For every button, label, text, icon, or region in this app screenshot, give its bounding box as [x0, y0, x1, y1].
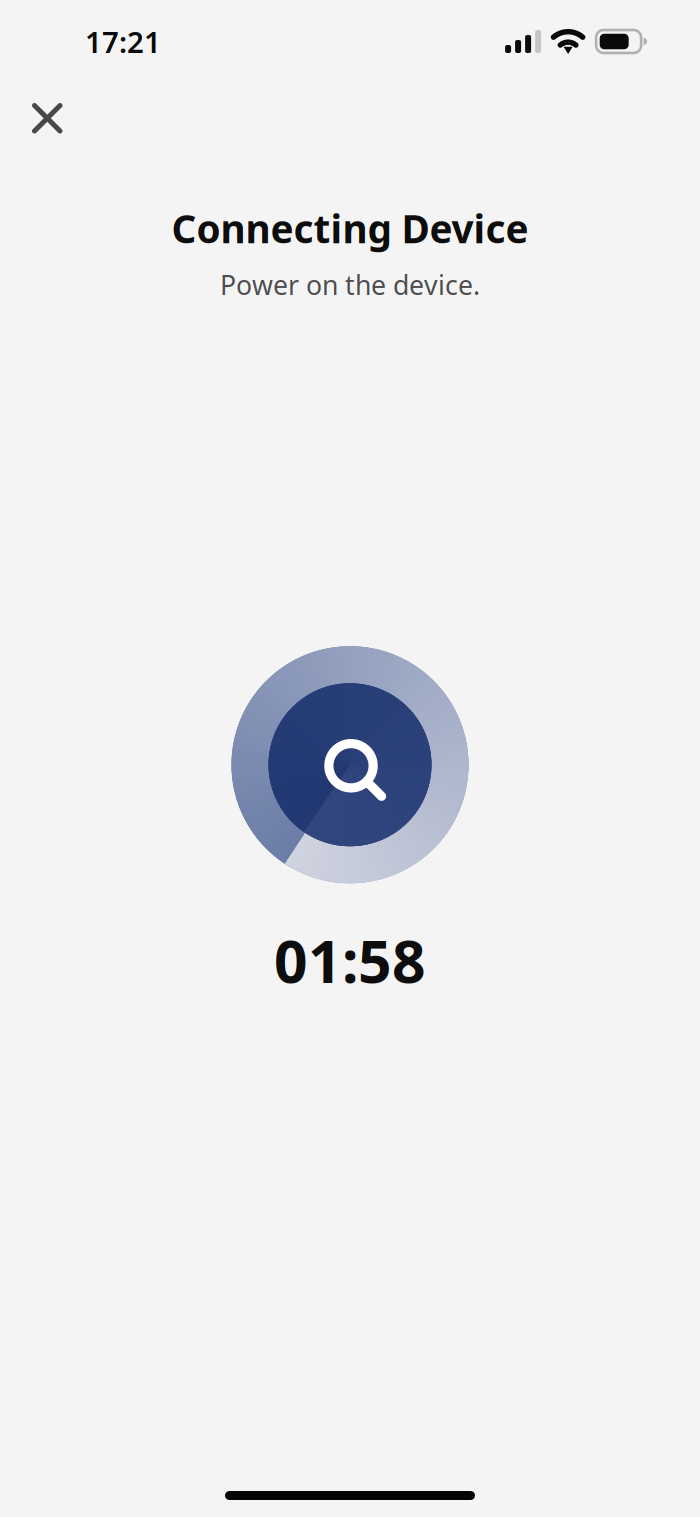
staticText: Connecting Device [171, 202, 528, 254]
staticText: 17:21 [85, 22, 161, 61]
button[interactable]: Close [20, 91, 74, 145]
staticText: 01:58 [274, 921, 426, 999]
staticText: Power on the device. [220, 267, 480, 302]
